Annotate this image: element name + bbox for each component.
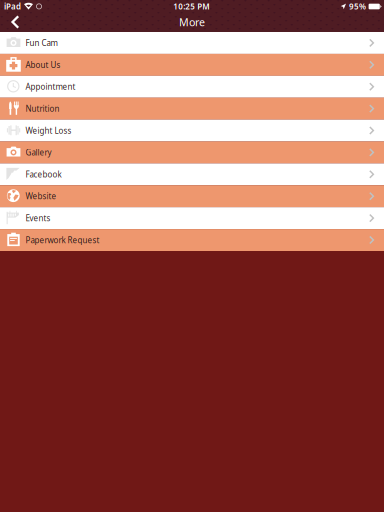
- staticText: More: [179, 15, 205, 29]
- button[interactable]: Facebook: [0, 163, 384, 185]
- staticText: Nutrition: [25, 103, 59, 114]
- staticText: iPad: [4, 1, 21, 12]
- staticText: 95%: [349, 1, 366, 12]
- staticText: About Us: [25, 59, 60, 70]
- button[interactable]: Gallery: [0, 141, 384, 163]
- staticText: 10:25 PM: [173, 1, 209, 12]
- button[interactable]: Events: [0, 207, 384, 229]
- button[interactable]: Back: [2, 12, 28, 31]
- staticText: Appointment: [25, 81, 75, 92]
- staticText: Facebook: [25, 169, 61, 180]
- button[interactable]: Weight Loss: [0, 120, 384, 141]
- button[interactable]: About Us: [0, 54, 384, 76]
- staticText: Website: [25, 191, 56, 201]
- staticText: Fun Cam: [25, 38, 57, 48]
- staticText: Gallery: [25, 147, 51, 158]
- staticText: Events: [25, 213, 50, 223]
- button[interactable]: Website: [0, 185, 384, 207]
- button[interactable]: Paperwork Request: [0, 229, 384, 251]
- button[interactable]: Nutrition: [0, 98, 384, 120]
- staticText: Weight Loss: [25, 125, 71, 136]
- button[interactable]: Fun Cam: [0, 32, 384, 54]
- staticText: Paperwork Request: [25, 235, 99, 245]
- button[interactable]: Appointment: [0, 76, 384, 98]
